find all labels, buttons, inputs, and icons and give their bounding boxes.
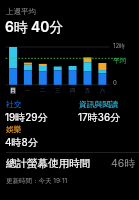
button[interactable]: 一 (20, 87, 35, 94)
staticText: 6時 40分 (5, 19, 64, 36)
staticText: 娛樂 (6, 124, 22, 134)
staticText: 四 (70, 87, 76, 94)
staticText: 0 (113, 79, 117, 86)
staticText: 五 (85, 87, 91, 94)
staticText: 日 (10, 87, 16, 94)
staticText: 社交 (6, 99, 22, 109)
staticText: 4時8分 (5, 136, 38, 149)
button[interactable]: 四 (65, 87, 80, 94)
staticText: 19時29分 (5, 111, 48, 124)
staticText: 二 (40, 87, 46, 94)
staticText: 上週平均 (6, 7, 36, 16)
button[interactable]: 二 (35, 87, 50, 94)
staticText: 總計螢幕使用時間 (6, 157, 90, 170)
staticText: 三 (55, 87, 61, 94)
staticText: 一 (25, 87, 31, 94)
staticText: 六 (100, 87, 106, 94)
button[interactable]: 三 (50, 87, 65, 94)
staticText: 平均 (113, 57, 126, 65)
staticText: 46時 (111, 157, 135, 170)
staticText: 資訊與閱讀 (79, 99, 118, 109)
button[interactable]: 六 (95, 87, 110, 94)
staticText: 12時 (113, 42, 126, 50)
staticText: 更新時間：今天 19:11 (6, 177, 68, 185)
staticText: 17時36分 (78, 111, 121, 124)
button[interactable]: 日 (6, 87, 20, 94)
button[interactable]: 五 (80, 87, 95, 94)
button[interactable]: 總計螢幕使用時間 (0, 156, 139, 170)
